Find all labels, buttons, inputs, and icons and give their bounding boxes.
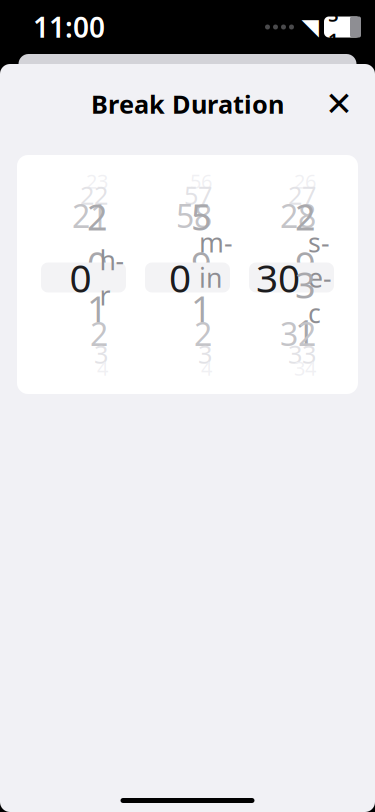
staticText: 2 (90, 312, 108, 355)
staticText: min (199, 224, 233, 331)
staticText: 59 (191, 193, 212, 288)
staticText: 58 (176, 194, 212, 237)
staticText: 0 (69, 252, 91, 303)
staticText: sec (308, 224, 332, 331)
staticText: 27 (288, 178, 316, 212)
staticText: 56 (190, 168, 212, 194)
staticText: 29 (295, 193, 316, 288)
staticText: 33 (288, 337, 316, 371)
staticText: 4 (97, 355, 108, 381)
staticText: 26 (294, 168, 316, 194)
staticText: ◥ (301, 14, 318, 40)
staticText: 32 (280, 312, 316, 355)
staticText: 30 (256, 252, 300, 303)
staticText: 23 (86, 168, 108, 194)
staticText: ✕ (325, 85, 353, 123)
staticText: 1 (191, 285, 212, 332)
staticText: 20 (87, 193, 108, 288)
button[interactable]: 23 (41, 175, 126, 373)
staticText: 2 (194, 312, 212, 355)
staticText: 28 (280, 194, 316, 237)
staticText: 11:00 (33, 8, 105, 46)
button[interactable]: 56 (145, 175, 230, 373)
staticText: 0 (169, 252, 191, 303)
staticText: 4 (201, 355, 212, 381)
button[interactable]: 26 (249, 175, 334, 373)
staticText: 31 (295, 261, 316, 356)
staticText: Break Duration (91, 87, 284, 121)
staticText: 21 (72, 194, 108, 237)
staticText: 22 (80, 178, 108, 212)
staticText: 51 (328, 2, 339, 52)
staticText: 57 (184, 178, 212, 212)
button[interactable]: Close (317, 82, 361, 126)
staticText: hr (99, 242, 124, 313)
staticText: 3 (94, 337, 108, 371)
staticText: 34 (294, 355, 316, 381)
staticText: 3 (198, 337, 212, 371)
staticText: 1 (87, 285, 108, 332)
